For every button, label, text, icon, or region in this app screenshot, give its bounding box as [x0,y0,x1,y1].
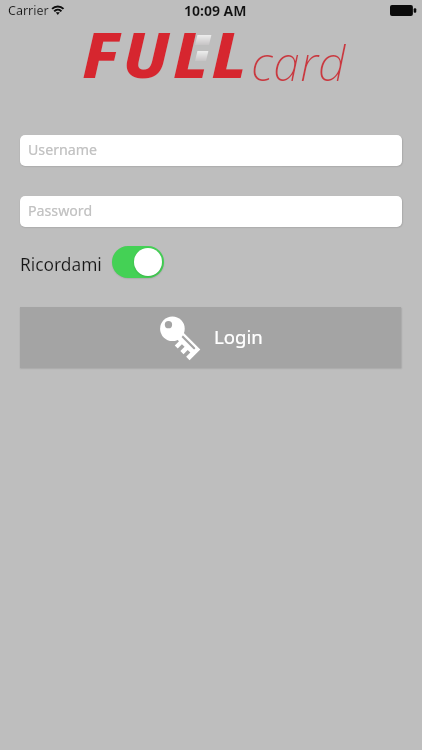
staticText: 10:09 AM [184,1,247,20]
staticText: Carrier [8,2,49,19]
staticText: card [251,30,346,95]
staticText: Username [28,140,98,159]
staticText: Login [214,324,263,349]
button[interactable]: Password [20,196,402,227]
button[interactable]: Login [20,307,401,368]
staticText: Password [28,201,93,220]
staticText: FULL [82,12,250,96]
button[interactable]: Username [20,135,402,166]
button[interactable]: Ricordami [112,246,164,278]
staticText: Ricordami [20,253,102,277]
